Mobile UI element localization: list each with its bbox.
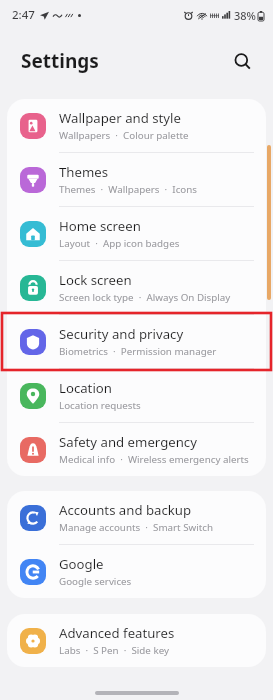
- button[interactable]: Location: [7, 369, 266, 422]
- button[interactable]: Lock screen: [7, 261, 266, 314]
- staticText: Security and privacy: [59, 325, 184, 343]
- staticText: Manage accounts · Smart Switch: [59, 521, 214, 534]
- staticText: 2:47: [12, 7, 35, 23]
- button[interactable]: Advanced features: [7, 614, 266, 667]
- staticText: Themes · Wallpapers · Icons: [59, 183, 198, 196]
- staticText: Wallpaper and style: [59, 109, 181, 127]
- staticText: Lock screen: [59, 271, 132, 289]
- staticText: Advanced features: [59, 624, 175, 642]
- staticText: Labs · S Pen · Side key: [59, 644, 169, 657]
- staticText: Google services: [59, 575, 132, 588]
- button[interactable]: Accounts and backup: [7, 491, 266, 544]
- staticText: Layout · App icon badges: [59, 237, 180, 250]
- staticText: Home screen: [59, 217, 141, 235]
- button[interactable]: Wallpaper and style: [7, 99, 266, 152]
- staticText: 38%: [234, 8, 256, 23]
- staticText: Biometrics · Permission manager: [59, 345, 217, 358]
- staticText: Location: [59, 379, 112, 397]
- button[interactable]: Themes: [7, 153, 266, 206]
- button[interactable]: Google: [7, 545, 266, 598]
- button[interactable]: Security and privacy: [7, 315, 266, 368]
- button[interactable]: Home screen: [7, 207, 266, 260]
- staticText: Themes: [59, 163, 109, 181]
- staticText: Accounts and backup: [59, 501, 192, 519]
- staticText: Google: [59, 555, 104, 573]
- staticText: Safety and emergency: [59, 433, 197, 451]
- button[interactable]: Safety and emergency: [7, 423, 266, 476]
- staticText: Location requests: [59, 399, 141, 412]
- staticText: Wallpapers · Colour palette: [59, 129, 189, 142]
- staticText: Screen lock type · Always On Display: [59, 291, 231, 304]
- staticText: Medical info · Wireless emergency alerts: [59, 453, 249, 466]
- button[interactable]: Search: [225, 44, 259, 78]
- staticText: Settings: [21, 48, 99, 74]
